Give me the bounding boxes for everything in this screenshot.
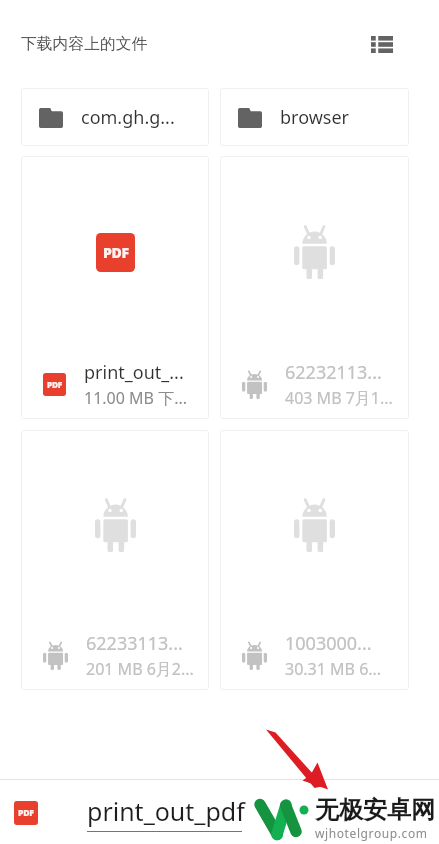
staticText: PDF <box>18 807 34 819</box>
staticText: wjhotelgroup.com <box>315 825 428 841</box>
button[interactable]: 62232113... <box>220 156 409 419</box>
staticText: 11.00 MB 下... <box>84 387 187 409</box>
button[interactable]: com.gh.g... <box>21 88 209 146</box>
button[interactable]: 1003000... <box>220 430 409 690</box>
button[interactable]: List view <box>365 27 399 61</box>
staticText: 下载内容上的文件 <box>21 34 148 54</box>
staticText: 无极安卓网 <box>315 795 435 825</box>
staticText: print_out_... <box>84 360 184 385</box>
staticText: 62233113... <box>86 631 183 656</box>
staticText: 1003000... <box>285 631 372 656</box>
staticText: browser <box>280 105 350 130</box>
button[interactable]: PDF <box>21 156 209 419</box>
staticText: com.gh.g... <box>81 105 175 130</box>
button[interactable]: PDF <box>0 780 250 844</box>
button[interactable]: 62233113... <box>21 430 209 690</box>
staticText: PDF <box>103 243 129 262</box>
staticText: PDF <box>47 379 63 390</box>
staticText: 403 MB 7月1... <box>285 387 393 409</box>
staticText: print_out_pdf <box>87 794 245 828</box>
staticText: 30.31 MB 6... <box>285 658 382 680</box>
staticText: 62232113... <box>285 360 382 385</box>
staticText: 201 MB 6月2... <box>86 658 194 680</box>
button[interactable]: browser <box>220 88 409 146</box>
